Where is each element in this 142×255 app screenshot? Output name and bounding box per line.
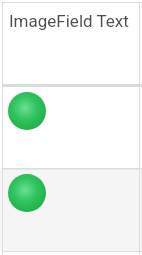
staticText: ImageField Text bbox=[9, 11, 129, 31]
button[interactable] bbox=[0, 85, 142, 168]
button[interactable] bbox=[0, 168, 142, 251]
button[interactable]: ImageField Text bbox=[0, 0, 142, 85]
